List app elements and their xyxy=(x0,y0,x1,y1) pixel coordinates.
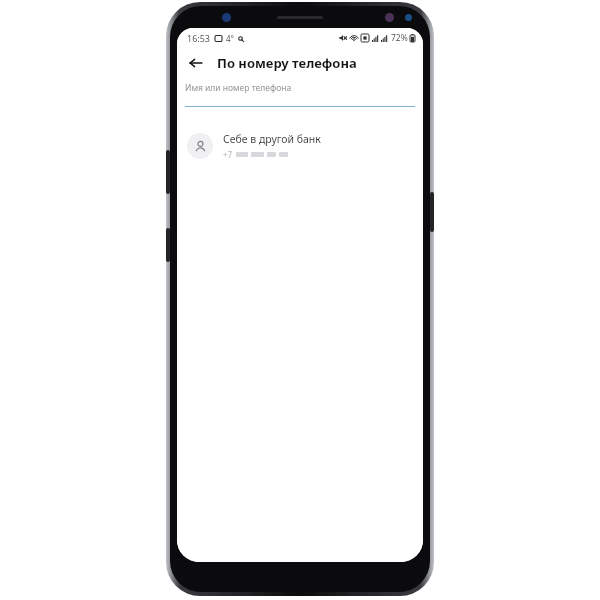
button[interactable]: Back xyxy=(183,50,209,76)
button[interactable]: Себе в другой банк xyxy=(177,123,423,169)
staticText: +7 xyxy=(223,149,233,160)
staticText: 16:53 xyxy=(187,32,211,44)
staticText: 72% xyxy=(391,32,408,44)
staticText: 4° xyxy=(226,33,234,44)
staticText: Себе в другой банк xyxy=(223,132,321,146)
staticText: Имя или номер телефона xyxy=(185,82,292,94)
button[interactable]: Имя или номер телефона xyxy=(177,78,423,107)
staticText: По номеру телефона xyxy=(217,54,357,72)
